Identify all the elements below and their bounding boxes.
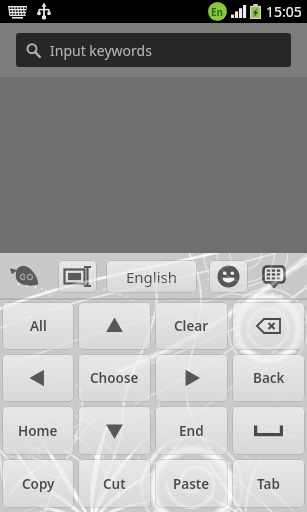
button[interactable]: Right	[155, 354, 228, 402]
staticText: End	[179, 422, 204, 440]
button[interactable]: Cut	[78, 459, 151, 508]
button[interactable]: Up	[78, 302, 151, 350]
button[interactable]: Left	[2, 354, 74, 402]
staticText: Tab	[257, 475, 280, 493]
button[interactable]: GO Keyboard settings	[8, 260, 42, 293]
button[interactable]: Clear	[155, 302, 228, 350]
button[interactable]: Hide keyboard	[259, 262, 289, 292]
button[interactable]: Text editing	[58, 260, 97, 293]
staticText: All	[30, 317, 47, 335]
button[interactable]: Copy	[2, 459, 74, 508]
staticText: 15:05	[266, 2, 302, 21]
staticText: Cut	[103, 475, 126, 493]
staticText: En	[211, 5, 224, 19]
staticText: English	[126, 267, 178, 287]
staticText: Copy	[22, 475, 55, 493]
button[interactable]: Back	[232, 354, 305, 402]
button[interactable]: Choose	[78, 354, 151, 402]
staticText: Back	[253, 369, 285, 387]
button[interactable]: Down	[78, 406, 151, 455]
button[interactable]: Emoji	[209, 260, 248, 293]
staticText: Home	[18, 422, 58, 440]
button[interactable]: End	[155, 406, 228, 455]
button[interactable]: Delete	[232, 302, 305, 350]
button[interactable]: All	[2, 302, 74, 350]
staticText: Choose	[90, 369, 139, 387]
staticText: Clear	[174, 317, 209, 335]
button[interactable]: English	[106, 260, 197, 293]
button[interactable]: Home	[2, 406, 74, 455]
button[interactable]: Input keywords	[16, 33, 291, 67]
staticText: Input keywords	[50, 41, 152, 60]
button[interactable]: Tab	[232, 459, 305, 508]
button[interactable]: Paste	[155, 459, 228, 508]
staticText: Paste	[173, 475, 210, 493]
button[interactable]: Space	[232, 406, 305, 455]
